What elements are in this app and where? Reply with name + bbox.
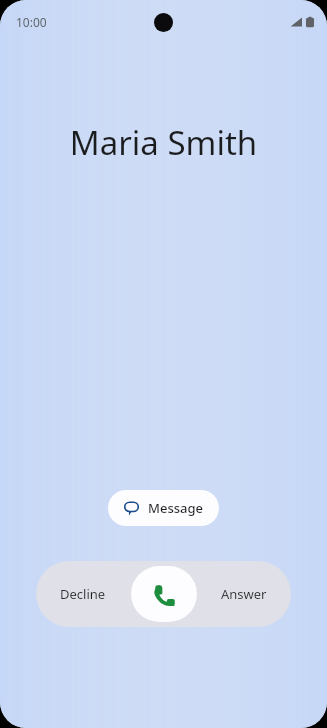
button[interactable]: Decline xyxy=(36,561,130,627)
staticText: 10:00 xyxy=(16,14,47,30)
button[interactable]: Answer call xyxy=(131,566,197,622)
staticText: Decline xyxy=(60,585,106,603)
button[interactable]: Message xyxy=(108,490,219,526)
staticText: Message xyxy=(148,499,203,517)
staticText: Answer xyxy=(221,585,267,603)
button[interactable]: Answer xyxy=(196,561,291,627)
staticText: Maria Smith xyxy=(0,120,327,165)
